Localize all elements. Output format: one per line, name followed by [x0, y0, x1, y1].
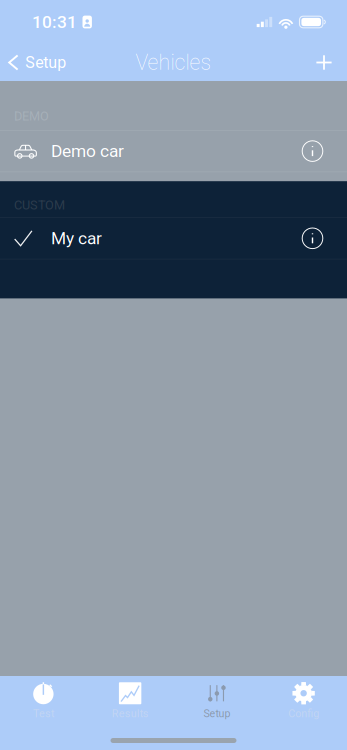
staticText: Config [288, 707, 319, 720]
staticText: Setup [25, 53, 66, 72]
button[interactable]: Test [0, 680, 87, 722]
staticText: Vehicles [135, 50, 211, 75]
staticText: Demo car [51, 141, 124, 161]
button[interactable]: Setup [173, 680, 260, 722]
staticText: Test [33, 707, 54, 720]
button[interactable]: Add vehicle [301, 44, 347, 81]
staticText: DEMO [14, 109, 49, 123]
staticText: My car [51, 228, 102, 248]
button[interactable]: Config [260, 680, 347, 722]
staticText: Results [112, 707, 149, 720]
staticText: CUSTOM [14, 198, 65, 213]
button[interactable]: Setup [0, 44, 74, 81]
button[interactable]: Results [87, 680, 174, 722]
button[interactable]: My car [0, 218, 347, 259]
staticText: Setup [203, 707, 230, 720]
button[interactable]: Demo car [0, 131, 347, 172]
staticText: 10:31 [32, 12, 77, 32]
